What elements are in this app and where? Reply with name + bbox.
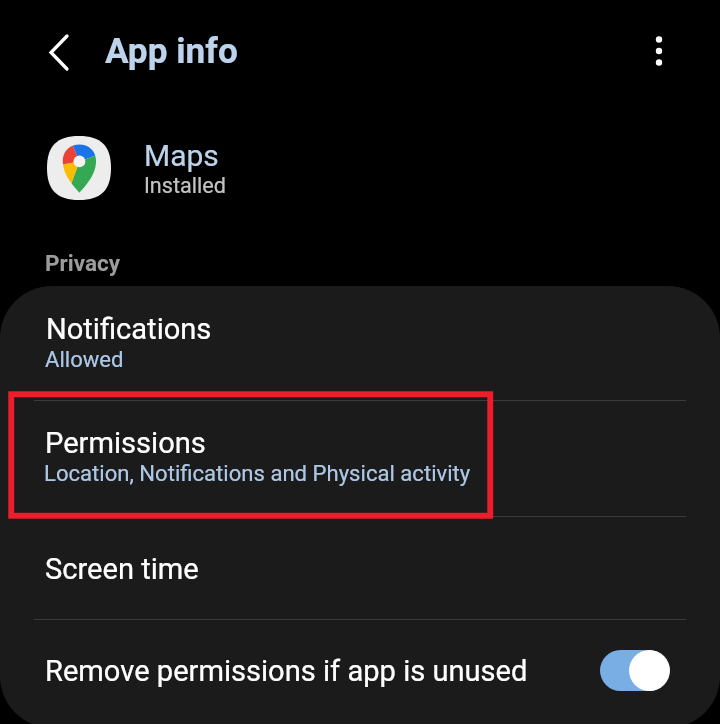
staticText: Remove permissions if app is unused xyxy=(45,654,528,688)
button[interactable]: Navigate up xyxy=(27,28,75,76)
staticText: Allowed xyxy=(45,347,124,373)
button[interactable]: More options xyxy=(635,27,683,75)
button[interactable]: Remove permissions if app is unused xyxy=(0,619,720,724)
staticText: Permissions xyxy=(45,426,206,460)
staticText: Maps xyxy=(144,138,219,173)
button[interactable]: Remove permissions if app is unused xyxy=(600,650,669,691)
staticText: Privacy xyxy=(45,250,121,276)
staticText: Notifications xyxy=(46,312,212,346)
button[interactable]: Screen time xyxy=(0,516,720,619)
button[interactable]: Permissions xyxy=(0,400,720,516)
staticText: Installed xyxy=(144,173,226,198)
staticText: Location, Notifications and Physical act… xyxy=(44,461,471,487)
staticText: App info xyxy=(105,30,238,71)
button[interactable]: Notifications xyxy=(0,286,720,400)
staticText: Screen time xyxy=(45,552,199,586)
